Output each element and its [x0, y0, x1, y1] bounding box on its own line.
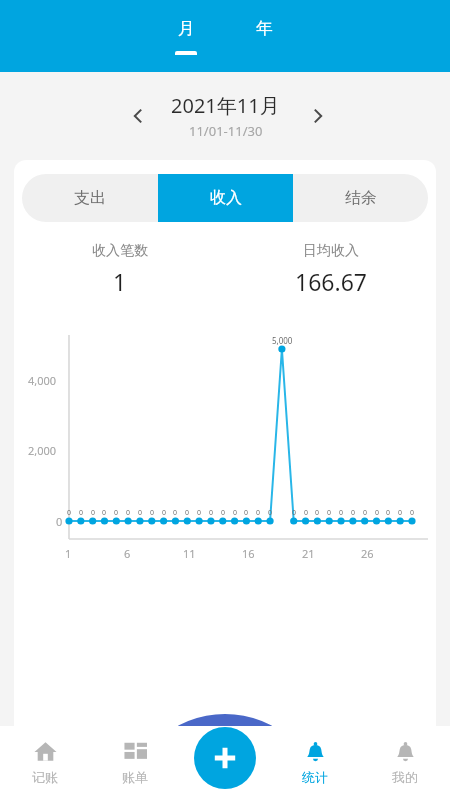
- staticText: 收入: [210, 188, 242, 208]
- staticText: 0: [268, 508, 273, 518]
- staticText: 账单: [122, 769, 148, 785]
- staticText: 0: [327, 508, 332, 518]
- staticText: 年: [256, 18, 273, 39]
- staticText: 月: [178, 18, 195, 39]
- staticText: 支出: [74, 188, 106, 208]
- staticText: 0: [138, 508, 143, 518]
- staticText: 0: [398, 508, 403, 518]
- staticText: 5,000: [272, 335, 293, 346]
- staticText: 收入笔数: [92, 242, 148, 260]
- button[interactable]: 支出: [22, 174, 158, 222]
- staticText: 0: [91, 508, 96, 518]
- staticText: 4,000: [28, 373, 57, 388]
- staticText: 0: [221, 508, 226, 518]
- staticText: 0: [304, 508, 309, 518]
- staticText: 我的: [392, 769, 418, 785]
- staticText: 11/01-11/30: [189, 122, 263, 140]
- button[interactable]: 收入: [158, 174, 293, 222]
- staticText: 0: [256, 508, 261, 518]
- staticText: 0: [126, 508, 131, 518]
- staticText: 0: [244, 508, 249, 518]
- staticText: 6: [124, 546, 131, 561]
- button[interactable]: Next month: [298, 96, 338, 136]
- staticText: 0: [209, 508, 214, 518]
- staticText: 0: [351, 508, 356, 518]
- staticText: 0: [315, 508, 320, 518]
- staticText: 0: [102, 508, 107, 518]
- staticText: 0: [114, 508, 119, 518]
- button[interactable]: 月: [169, 18, 203, 55]
- staticText: 11: [183, 546, 196, 561]
- staticText: 0: [173, 508, 178, 518]
- staticText: 0: [185, 508, 190, 518]
- staticText: 16: [242, 546, 255, 561]
- staticText: 0: [197, 508, 202, 518]
- staticText: 1: [65, 546, 72, 561]
- button[interactable]: Add record: [194, 727, 256, 789]
- button[interactable]: 统计: [270, 726, 360, 800]
- staticText: 0: [233, 508, 238, 518]
- staticText: 0: [339, 508, 344, 518]
- staticText: 日均收入: [303, 242, 359, 260]
- staticText: 0: [386, 508, 391, 518]
- button[interactable]: 结余: [293, 174, 428, 222]
- button[interactable]: 年: [247, 18, 281, 55]
- staticText: 0: [150, 508, 155, 518]
- staticText: 21: [302, 546, 315, 561]
- staticText: 0: [375, 508, 380, 518]
- staticText: 2021年11月: [171, 92, 280, 119]
- staticText: 0: [79, 508, 84, 518]
- staticText: 结余: [345, 188, 377, 208]
- staticText: 0: [410, 508, 415, 518]
- staticText: 2,000: [28, 443, 57, 458]
- staticText: 0: [56, 514, 63, 529]
- staticText: 0: [162, 508, 167, 518]
- button[interactable]: 我的: [360, 726, 450, 800]
- staticText: 1: [113, 266, 127, 297]
- staticText: 26: [361, 546, 374, 561]
- staticText: 0: [67, 508, 72, 518]
- staticText: 166.67: [295, 266, 367, 297]
- staticText: 0: [363, 508, 368, 518]
- button[interactable]: 记账: [0, 726, 90, 800]
- button[interactable]: Previous month: [118, 96, 158, 136]
- button[interactable]: 账单: [90, 726, 180, 800]
- staticText: 0: [292, 508, 297, 518]
- staticText: 记账: [32, 769, 58, 785]
- staticText: 统计: [302, 769, 328, 785]
